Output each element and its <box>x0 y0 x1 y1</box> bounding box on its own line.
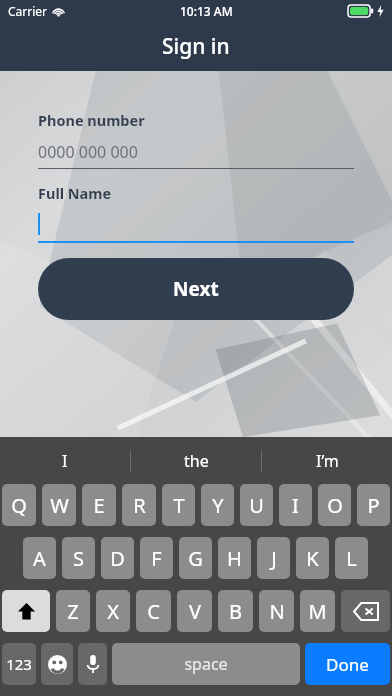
staticText: R <box>133 492 146 519</box>
button[interactable]: Q <box>2 484 36 526</box>
button[interactable]: E <box>82 484 116 526</box>
staticText: Y <box>212 492 224 519</box>
button[interactable]: F <box>140 537 173 579</box>
staticText: U <box>249 492 264 519</box>
staticText: I <box>62 450 68 472</box>
staticText: J <box>271 545 277 572</box>
button[interactable]: Next <box>38 258 354 320</box>
button[interactable]: U <box>240 484 273 526</box>
staticText: 10:13 AM <box>180 3 233 19</box>
staticText: G <box>188 545 203 572</box>
staticText: V <box>189 598 201 625</box>
button[interactable]: G <box>179 537 212 579</box>
button[interactable]: A <box>23 537 56 579</box>
staticText: Sign in <box>162 32 230 61</box>
staticText: S <box>73 545 84 572</box>
staticText: the <box>184 450 209 472</box>
staticText: Phone number <box>38 110 145 130</box>
button[interactable]: S <box>62 537 95 579</box>
button[interactable]: B <box>218 590 253 632</box>
button[interactable]: Shift <box>2 590 50 632</box>
button[interactable]: O <box>318 484 351 526</box>
staticText: T <box>173 492 185 519</box>
staticText: Done <box>326 653 369 676</box>
staticText: X <box>107 598 119 625</box>
button[interactable]: J <box>257 537 290 579</box>
button[interactable]: L <box>335 537 368 579</box>
staticText: 123 <box>6 654 32 674</box>
button[interactable]: C <box>136 590 171 632</box>
button[interactable]: Z <box>56 590 90 632</box>
staticText: L <box>346 545 357 572</box>
button[interactable]: Dictation <box>78 643 107 685</box>
button[interactable]: Emoji <box>41 643 73 685</box>
button[interactable]: H <box>218 537 251 579</box>
button[interactable]: I <box>279 484 312 526</box>
staticText: Q <box>11 492 27 519</box>
staticText: Z <box>67 598 79 625</box>
button[interactable]: N <box>259 590 294 632</box>
button[interactable]: K <box>296 537 329 579</box>
button[interactable]: R <box>122 484 156 526</box>
staticText: D <box>110 545 125 572</box>
staticText: B <box>229 598 242 625</box>
button[interactable]: T <box>162 484 195 526</box>
button[interactable] <box>38 211 354 237</box>
button[interactable]: 0000 000 000 <box>38 140 354 164</box>
button[interactable]: 123 <box>2 643 36 685</box>
button[interactable]: Done <box>305 643 390 685</box>
button[interactable]: P <box>357 484 390 526</box>
staticText: Next <box>173 276 219 302</box>
staticText: C <box>147 598 160 625</box>
button[interactable]: the <box>131 437 261 484</box>
staticText: W <box>50 492 69 519</box>
button[interactable]: Y <box>201 484 234 526</box>
staticText: F <box>151 545 162 572</box>
button[interactable]: V <box>177 590 212 632</box>
button[interactable]: W <box>42 484 76 526</box>
button[interactable]: Backspace <box>341 590 390 632</box>
staticText: E <box>93 492 105 519</box>
staticText: Full Name <box>38 183 112 203</box>
staticText: I <box>292 492 299 519</box>
button[interactable]: I’m <box>262 437 392 484</box>
button[interactable]: X <box>96 590 130 632</box>
staticText: O <box>327 492 343 519</box>
staticText: K <box>306 545 319 572</box>
staticText: space <box>184 653 228 675</box>
staticText: H <box>227 545 242 572</box>
staticText: P <box>367 492 380 519</box>
staticText: Carrier <box>8 3 48 19</box>
staticText: M <box>308 598 327 625</box>
staticText: I’m <box>316 450 339 472</box>
staticText: A <box>33 545 46 572</box>
button[interactable]: M <box>300 590 335 632</box>
staticText: 0000 000 000 <box>38 141 138 163</box>
button[interactable]: I <box>0 437 130 484</box>
button[interactable]: space <box>112 643 300 685</box>
staticText: N <box>269 598 285 625</box>
button[interactable]: D <box>101 537 134 579</box>
